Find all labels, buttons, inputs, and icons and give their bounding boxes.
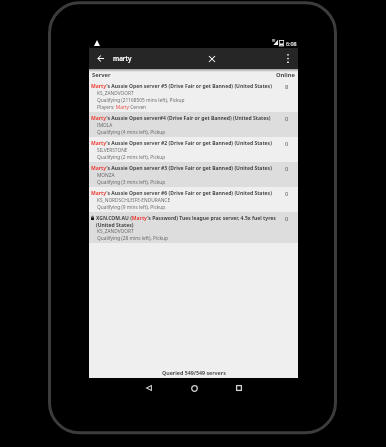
staticText: Qualifying (3 mins left), Pickup: [97, 179, 166, 186]
staticText: 0: [285, 115, 289, 123]
staticText: Marty's Aussie Open server #6 (Drive Fai…: [91, 190, 272, 197]
staticText: Online: [276, 71, 296, 79]
staticText: MONZA: [97, 172, 115, 179]
button[interactable]: Marty's Aussie Open server #2 (Drive Fai…: [89, 137, 298, 162]
staticText: 0: [285, 215, 289, 223]
staticText: KS_NORDSCHLEIFE-ENDURANCE: [97, 197, 171, 204]
button[interactable]: Clear search: [202, 49, 221, 68]
staticText: KS_ZANDVOORT: [97, 228, 134, 235]
staticText: 0: [285, 140, 289, 148]
staticText: Marty's Aussie Open server #2 (Drive Fai…: [91, 140, 272, 147]
staticText: 8: [285, 83, 289, 91]
staticText: 6:08: [286, 40, 297, 47]
button[interactable]: XGN.COM.AU (Marty's Password) Tues leagu…: [89, 212, 298, 243]
staticText: Marty's Aussie Open server #5 (Drive Fai…: [91, 83, 272, 90]
staticText: Qualifying (2 mins left), Pickup: [97, 154, 166, 161]
button[interactable]: Home: [186, 380, 202, 396]
button[interactable]: Back: [141, 380, 157, 396]
staticText: Server: [92, 71, 111, 79]
button[interactable]: Marty's Aussie Open server#4 (Drive Fair…: [89, 112, 298, 137]
staticText: marty: [113, 54, 132, 63]
staticText: 0: [285, 190, 289, 198]
button[interactable]: Navigate up: [91, 49, 110, 68]
staticText: 0: [285, 165, 289, 173]
staticText: Queried 549/549 servers: [162, 369, 226, 376]
staticText: Marty's Aussie Open server#4 (Drive Fair…: [91, 115, 271, 122]
button[interactable]: Marty's Aussie Open server #5 (Drive Fai…: [89, 80, 298, 112]
staticText: KS_ZANDVOORT: [97, 90, 134, 97]
staticText: Qualifying (4 mins left), Pickup: [97, 129, 166, 136]
staticText: Players: Marty Cerven: [97, 104, 147, 111]
staticText: IMOLA: [97, 122, 113, 129]
staticText: SILVERSTONE: [97, 147, 128, 154]
staticText: Qualifying (21168505 mins left), Pickup: [97, 97, 185, 104]
staticText: Qualifying (28 mins left), Pickup: [97, 235, 168, 242]
button[interactable]: Marty's Aussie Open server #6 (Drive Fai…: [89, 187, 298, 212]
staticText: Qualifying (9 mins left), Pickup: [97, 204, 166, 211]
staticText: Marty's Aussie Open server #3 (Drive Fai…: [91, 165, 272, 172]
button[interactable]: More options: [278, 49, 297, 68]
staticText: XGN.COM.AU (Marty's Password) Tues leagu…: [96, 215, 278, 228]
button[interactable]: Recent apps: [231, 380, 247, 396]
button[interactable]: Marty's Aussie Open server #3 (Drive Fai…: [89, 162, 298, 187]
